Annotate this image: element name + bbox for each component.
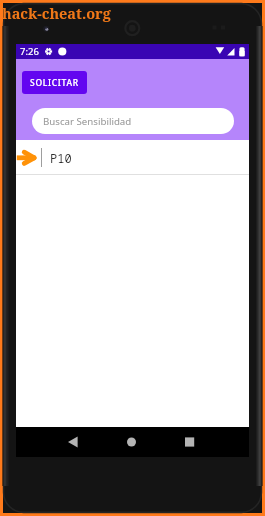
staticText: SOLICITAR [30, 77, 79, 89]
button[interactable]: SOLICITAR [22, 71, 87, 94]
staticText: hack-cheat.org [2, 3, 111, 23]
staticText: P10 [50, 150, 72, 166]
staticText: Buscar Sensibilidad [43, 115, 132, 128]
staticText: 7:26 [20, 45, 39, 58]
button[interactable]: P10 [16, 140, 249, 174]
button[interactable]: Buscar Sensibilidad [32, 108, 234, 134]
